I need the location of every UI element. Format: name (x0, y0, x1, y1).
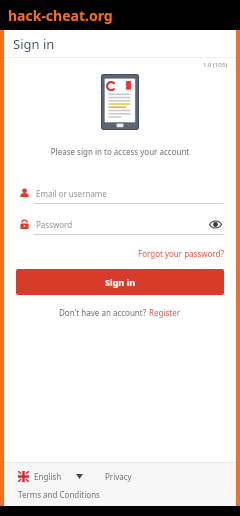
staticText: Password (36, 219, 73, 230)
button[interactable]: Email or username field (16, 183, 224, 204)
staticText: Forgot your password? (138, 248, 224, 259)
staticText: Don't have an account? (59, 307, 149, 318)
button[interactable]: Privacy (101, 469, 136, 484)
staticText: Terms and Conditions (18, 489, 100, 500)
button[interactable]: Register (149, 305, 181, 320)
button[interactable]: English (4, 469, 87, 484)
button[interactable]: Show password (206, 215, 224, 233)
button[interactable]: Terms and Conditions (4, 487, 104, 502)
staticText: Register (149, 307, 181, 318)
staticText: Email or username (36, 188, 107, 199)
staticText: Sign in (105, 276, 136, 288)
button[interactable]: Sign in (16, 269, 224, 295)
button[interactable]: Forgot your password? (126, 246, 236, 261)
staticText: Privacy (105, 471, 132, 482)
staticText: Please sign in to access your account (4, 146, 236, 157)
staticText: hack-cheat.org (8, 6, 113, 25)
staticText: Sign in (13, 35, 55, 53)
staticText: English (34, 471, 62, 482)
staticText: 1.0 (105) (203, 61, 227, 69)
button[interactable]: Password field (16, 214, 224, 235)
